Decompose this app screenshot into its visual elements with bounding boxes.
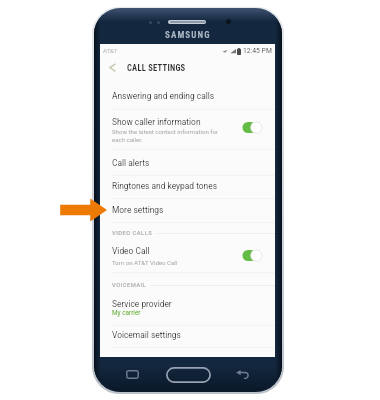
staticText: each caller. xyxy=(112,136,143,143)
staticText: Ringtones and keypad tones xyxy=(112,181,217,191)
button[interactable]: Back xyxy=(100,57,124,82)
button[interactable] xyxy=(100,85,275,109)
button[interactable] xyxy=(100,297,275,325)
button[interactable]: Toggle xyxy=(241,121,264,134)
staticText: AT&T xyxy=(103,47,118,54)
staticText: Voicemail settings xyxy=(112,330,181,340)
button[interactable] xyxy=(100,198,275,222)
staticText: Call alerts xyxy=(112,158,150,168)
staticText: Show caller information xyxy=(112,117,201,127)
button[interactable] xyxy=(100,109,275,149)
button[interactable] xyxy=(100,175,275,198)
staticText: CALL SETTINGS xyxy=(127,63,186,73)
staticText: More settings xyxy=(112,205,164,215)
staticText: Turn on AT&T Video Call xyxy=(112,259,178,266)
button[interactable] xyxy=(100,325,275,347)
staticText: 12:45 PM xyxy=(243,47,272,55)
staticText: Video Call xyxy=(112,246,150,256)
staticText: SAMSUNG xyxy=(165,30,211,41)
staticText: VOICEMAIL xyxy=(112,282,147,289)
staticText: Answering and ending calls xyxy=(112,91,215,101)
staticText: Show the latest contact information for xyxy=(112,128,218,135)
staticText: My carrier xyxy=(112,309,141,317)
button[interactable]: Toggle xyxy=(241,249,264,262)
staticText: Service provider xyxy=(112,299,172,309)
staticText: VIDEO CALLS xyxy=(112,230,153,237)
button[interactable] xyxy=(100,241,275,272)
button[interactable] xyxy=(100,149,275,175)
